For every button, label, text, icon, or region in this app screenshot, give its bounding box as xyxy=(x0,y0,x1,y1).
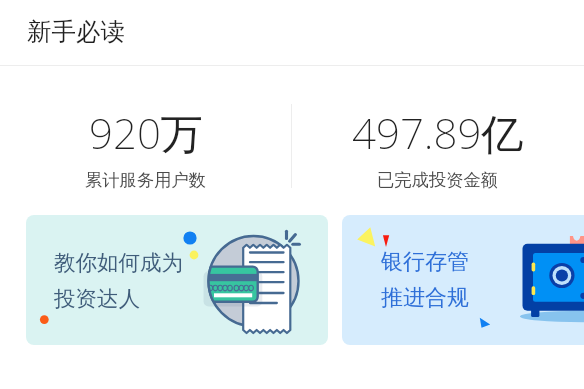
staticText: 投资达人 xyxy=(54,285,140,312)
staticText: 新手必读 xyxy=(27,16,125,47)
staticText: 已完成投资金额 xyxy=(377,169,499,191)
staticText: 银行存管 xyxy=(381,248,469,276)
staticText: 推进合规 xyxy=(381,284,469,312)
button[interactable]: 新手必读 xyxy=(0,0,584,65)
staticText: 920万 xyxy=(89,104,203,161)
staticText: 累计服务用户数 xyxy=(85,169,207,191)
staticText: 497.89亿 xyxy=(352,104,524,161)
staticText: 教你如何成为 xyxy=(54,249,183,276)
button[interactable]: 教你如何成为 xyxy=(26,215,328,345)
button[interactable]: 银行存管 xyxy=(342,215,584,345)
